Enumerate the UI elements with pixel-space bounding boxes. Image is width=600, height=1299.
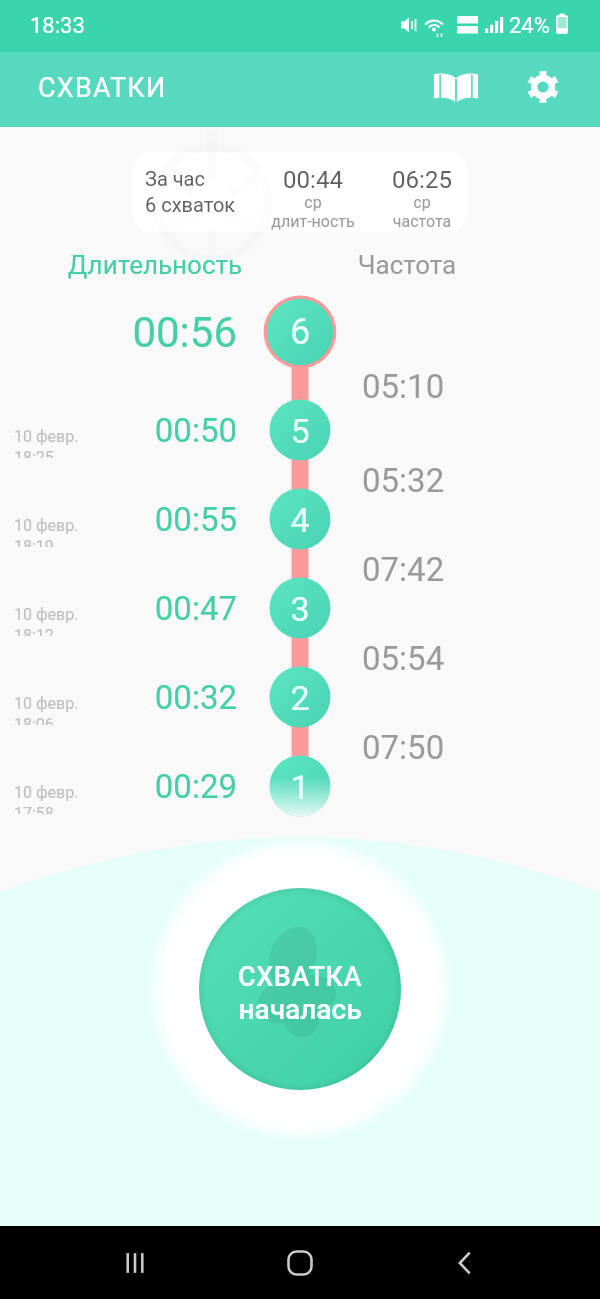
- staticText: Длительность: [0, 250, 385, 280]
- button[interactable]: Recent apps: [105, 1233, 165, 1293]
- staticText: 05:10: [362, 367, 445, 406]
- staticText: 6: [260, 311, 340, 353]
- staticText: 1: [260, 767, 340, 807]
- staticText: 00:56: [0, 308, 237, 357]
- staticText: 00:32: [0, 678, 237, 717]
- staticText: 06:25: [192, 166, 600, 194]
- button[interactable]: [169, 858, 431, 1120]
- button[interactable]: Guide: [423, 60, 488, 114]
- staticText: 00:44: [83, 166, 543, 194]
- button[interactable]: Settings: [512, 56, 574, 118]
- staticText: 10 февр. 18:12: [14, 605, 79, 636]
- staticText: 07:50: [362, 728, 445, 767]
- staticText: 05:32: [362, 461, 445, 500]
- staticText: 00:50: [0, 411, 237, 450]
- staticText: ср: [192, 193, 600, 212]
- staticText: СХВАТКА: [150, 961, 450, 993]
- staticText: СХВАТКИ: [38, 72, 167, 104]
- button[interactable]: Back: [435, 1233, 495, 1293]
- staticText: 00:29: [0, 767, 237, 806]
- staticText: 00:47: [0, 589, 237, 628]
- staticText: 2: [260, 678, 340, 718]
- staticText: длит-ность: [83, 212, 543, 231]
- staticText: 05:54: [362, 639, 445, 678]
- staticText: 4: [260, 500, 340, 540]
- staticText: частота: [192, 212, 600, 231]
- staticText: 00:55: [0, 500, 237, 539]
- staticText: 10 февр. 18:19: [14, 516, 79, 547]
- staticText: началась: [150, 993, 450, 1026]
- staticText: За час: [145, 167, 205, 190]
- staticText: 10 февр. 18:06: [14, 694, 79, 725]
- button[interactable]: Home: [270, 1233, 330, 1293]
- staticText: ср: [83, 193, 543, 212]
- staticText: 18:33: [30, 13, 85, 39]
- staticText: 10 февр. 18:25: [14, 427, 79, 458]
- staticText: 3: [260, 589, 340, 629]
- staticText: 07:42: [362, 550, 445, 589]
- staticText: Частота: [177, 250, 600, 280]
- staticText: 5: [260, 411, 340, 451]
- staticText: 6 схваток: [145, 193, 236, 216]
- staticText: 24%: [509, 13, 550, 39]
- staticText: 10 февр. 17:58: [14, 783, 79, 814]
- button[interactable]: [133, 152, 467, 232]
